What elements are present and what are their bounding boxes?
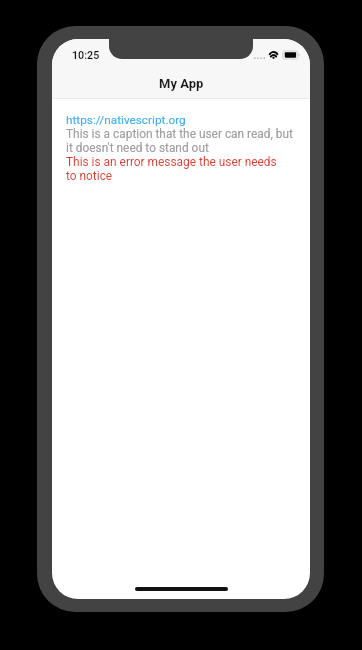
button[interactable]: https://nativescript.org	[66, 113, 186, 127]
staticText: This is an error message the user needs …	[66, 155, 277, 183]
staticText: 10:25	[72, 49, 100, 62]
staticText: This is a caption that the user can read…	[66, 127, 293, 155]
staticText: My App	[159, 76, 204, 91]
